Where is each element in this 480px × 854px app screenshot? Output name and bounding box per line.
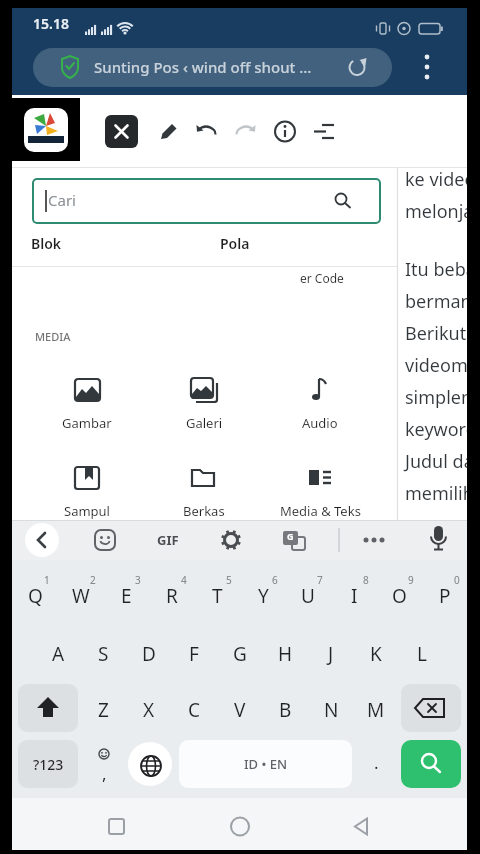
button[interactable]: Media & Teks [255, 458, 385, 520]
staticText: , [102, 762, 107, 785]
button[interactable]: ?123 [18, 740, 78, 788]
staticText: O [392, 583, 407, 609]
button[interactable]: W [58, 570, 104, 625]
staticText: F [189, 641, 199, 667]
button[interactable]: D [126, 628, 172, 683]
staticText: Media & Teks [280, 502, 361, 520]
button[interactable] [401, 684, 461, 732]
button[interactable] [128, 742, 172, 786]
staticText: Sunting Pos ‹ wind off shout ... [94, 57, 312, 77]
button[interactable] [25, 523, 59, 557]
button[interactable]: P [422, 570, 467, 625]
button[interactable]: G [278, 524, 310, 556]
button[interactable]: O [376, 570, 422, 625]
button[interactable] [412, 48, 444, 88]
staticText: A [52, 641, 65, 667]
staticText: J [328, 641, 334, 667]
button[interactable]: H [262, 628, 308, 683]
button[interactable]: U [285, 570, 331, 625]
staticText: Blok [31, 234, 62, 253]
button[interactable]: S [80, 628, 126, 683]
staticText: D [142, 641, 156, 667]
staticText: 2 [90, 573, 96, 587]
button[interactable]: G [217, 628, 263, 683]
staticText: bermanfaat [405, 289, 467, 314]
button[interactable]: Z [80, 684, 126, 739]
button[interactable]: A [35, 628, 81, 683]
staticText: W [72, 583, 90, 609]
button[interactable] [12, 98, 80, 161]
button[interactable]: . [355, 740, 398, 788]
staticText: R [166, 583, 178, 609]
button[interactable]: Galeri [139, 370, 269, 442]
button[interactable] [215, 524, 247, 556]
button[interactable]: L [399, 628, 445, 683]
staticText: X [143, 697, 155, 723]
button[interactable]: I [331, 570, 377, 625]
button[interactable]: Pola [204, 232, 397, 266]
staticText: 15.18 [33, 14, 69, 33]
button[interactable]: R [149, 570, 195, 625]
staticText: 3 [135, 573, 141, 587]
staticText: P [439, 583, 451, 609]
staticText: er Code [300, 270, 344, 286]
staticText: 5 [226, 573, 232, 587]
button[interactable] [105, 115, 138, 148]
button[interactable]: N [308, 684, 354, 739]
button[interactable] [308, 115, 340, 148]
staticText: V [234, 697, 246, 723]
staticText: Berikutnya [405, 321, 467, 346]
staticText: S [98, 641, 109, 667]
button[interactable]: Gambar [22, 370, 152, 442]
staticText: E [121, 583, 132, 609]
staticText: Pola [220, 234, 250, 253]
staticText: ke videonya [405, 167, 467, 192]
button[interactable]: V [217, 684, 263, 739]
button[interactable]: Audio [255, 370, 385, 442]
staticText: MEDIA [35, 329, 71, 344]
button[interactable] [345, 810, 379, 844]
staticText: I [351, 583, 358, 609]
button[interactable]: E [103, 570, 149, 625]
staticText: simplenya [405, 385, 467, 410]
button[interactable] [152, 115, 184, 148]
staticText: Judul dan [405, 449, 467, 474]
button[interactable] [89, 524, 121, 556]
staticText: 9 [408, 573, 414, 587]
button[interactable]: F [171, 628, 217, 683]
button[interactable]: J [308, 628, 354, 683]
button[interactable] [18, 684, 78, 732]
button[interactable]: GIF [148, 524, 188, 556]
button[interactable]: K [353, 628, 399, 683]
staticText: 4 [181, 573, 187, 587]
button[interactable]: Sampul [22, 458, 152, 520]
button[interactable]: Y [240, 570, 286, 625]
button[interactable]: Berkas [139, 458, 269, 520]
staticText: G [287, 530, 294, 542]
staticText: Itu bebas [405, 257, 467, 282]
button[interactable]: Cari [32, 178, 381, 224]
button[interactable]: B [262, 684, 308, 739]
button[interactable]: Sunting Pos ‹ wind off shout ... [33, 48, 392, 87]
button[interactable] [401, 740, 461, 788]
button[interactable] [230, 115, 262, 148]
staticText: 6 [272, 573, 278, 587]
button[interactable]: M [353, 684, 399, 739]
button[interactable] [190, 115, 222, 148]
button[interactable] [223, 810, 257, 844]
staticText: videomu [405, 353, 467, 378]
button[interactable]: X [126, 684, 172, 739]
button[interactable]: C [171, 684, 217, 739]
button[interactable]: Blok [12, 232, 204, 266]
button[interactable] [100, 810, 134, 844]
button[interactable]: T [194, 570, 240, 625]
button[interactable]: , [82, 740, 127, 788]
staticText: keywordnya [405, 417, 467, 442]
button[interactable]: Q [12, 570, 58, 625]
staticText: memilih [405, 481, 467, 506]
staticText: Sampul [64, 502, 110, 520]
staticText: 7 [317, 573, 323, 587]
button[interactable] [269, 115, 301, 148]
button[interactable]: ID • EN [179, 740, 352, 788]
staticText: . [374, 751, 379, 774]
